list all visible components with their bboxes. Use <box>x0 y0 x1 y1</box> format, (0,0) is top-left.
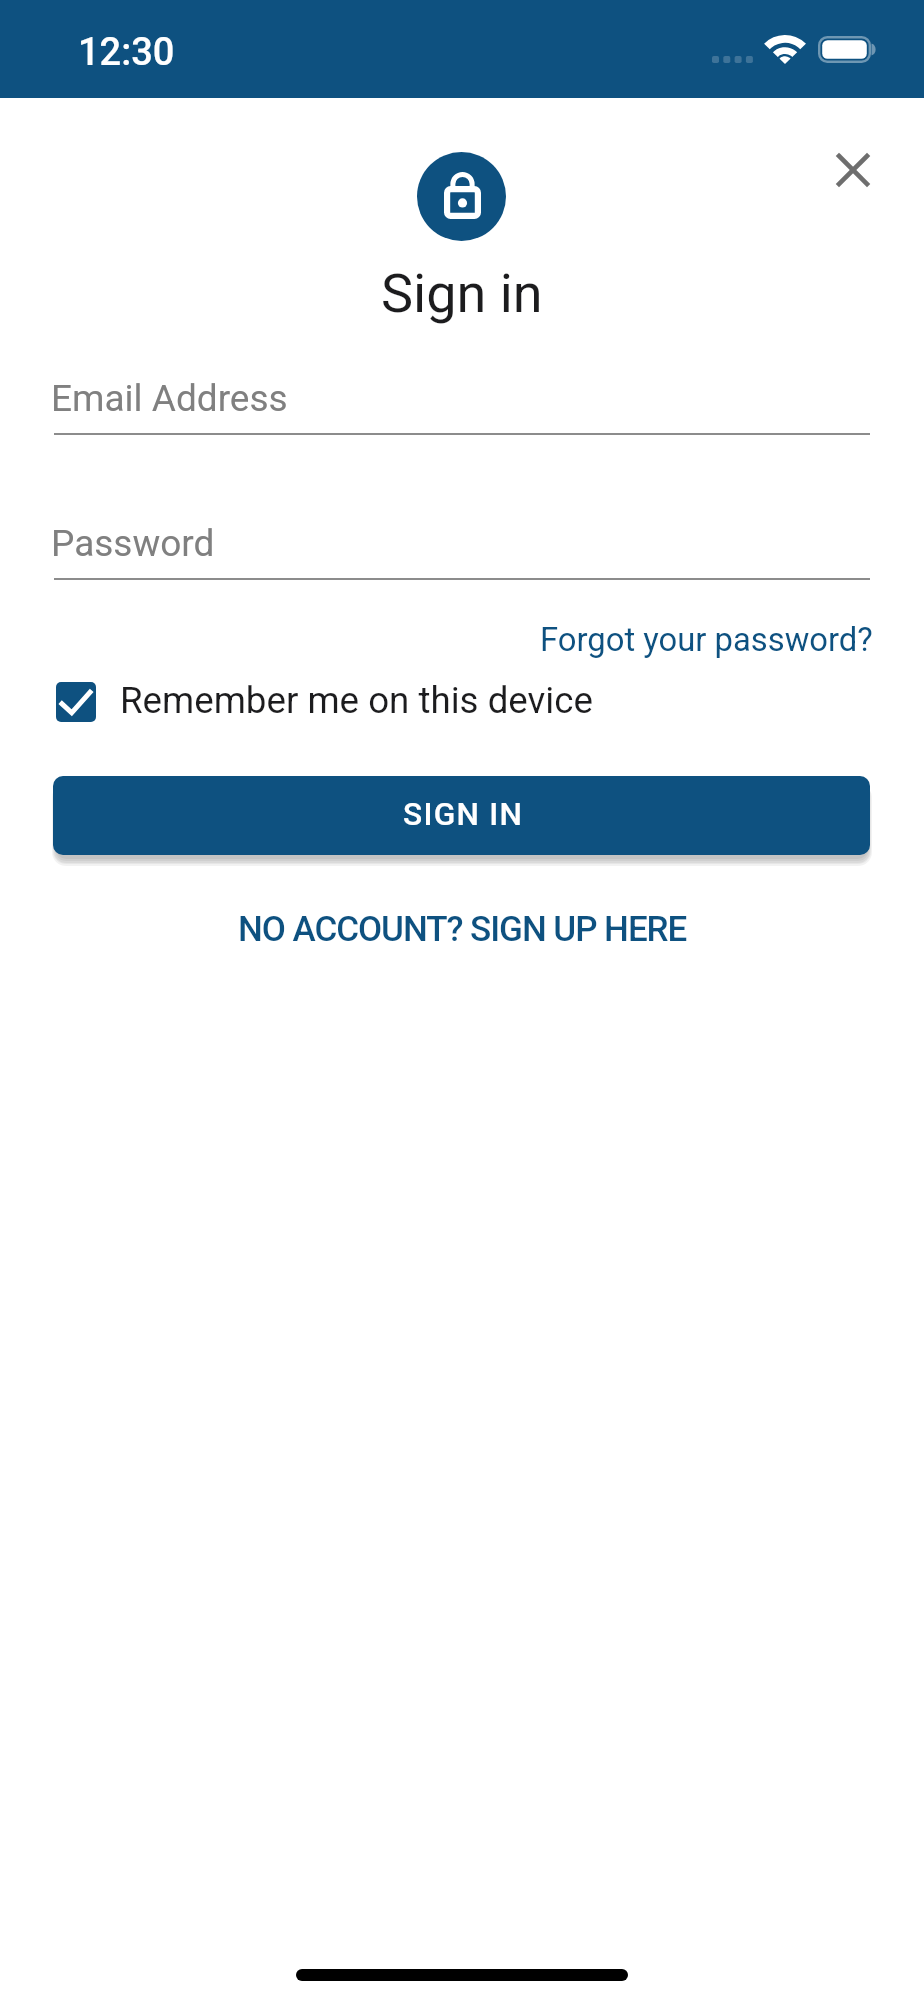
button[interactable]: Forgot your password? <box>530 608 882 670</box>
staticText: NO ACCOUNT? SIGN UP HERE <box>238 909 687 950</box>
staticText: SIGN IN <box>403 796 524 833</box>
staticText: Email Address <box>51 377 288 420</box>
button[interactable]: SIGN IN <box>53 776 870 855</box>
button[interactable]: Remember me on this device <box>53 674 593 724</box>
staticText: 12:30 <box>78 30 175 75</box>
button[interactable]: NO ACCOUNT? SIGN UP HERE <box>212 898 712 960</box>
staticText: Sign in <box>381 262 543 325</box>
staticText: Forgot your password? <box>540 621 873 659</box>
staticText: Remember me on this device <box>120 679 593 722</box>
button[interactable]: Close <box>815 132 890 207</box>
staticText: Password <box>51 522 215 565</box>
